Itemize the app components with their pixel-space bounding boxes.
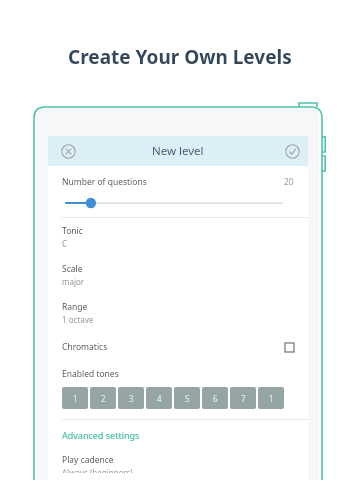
staticText: C xyxy=(62,238,68,249)
staticText: 7 xyxy=(241,393,246,404)
button[interactable]: Confirm xyxy=(281,140,303,162)
staticText: 4 xyxy=(157,393,162,404)
staticText: 1 xyxy=(73,393,78,404)
button[interactable]: 4 xyxy=(146,387,172,409)
button[interactable]: Close xyxy=(57,140,79,162)
staticText: Play cadence xyxy=(62,454,114,466)
staticText: Chromatics xyxy=(62,341,108,353)
staticText: Always (beginners) xyxy=(62,467,133,473)
button[interactable]: Advanced settings xyxy=(48,420,308,447)
button[interactable]: 1 xyxy=(258,387,284,409)
staticText: Tonic xyxy=(62,225,83,237)
button[interactable]: 3 xyxy=(118,387,144,409)
staticText: Advanced settings xyxy=(62,429,140,441)
button[interactable]: 2 xyxy=(90,387,116,409)
button[interactable]: Range xyxy=(48,294,308,332)
staticText: Scale xyxy=(62,263,83,275)
staticText: New level xyxy=(152,143,204,159)
staticText: Range xyxy=(62,301,88,313)
staticText: Enabled tones xyxy=(62,368,119,380)
button[interactable]: Tonic xyxy=(48,218,308,256)
staticText: 1 octave xyxy=(62,314,94,325)
staticText: Create Your Own Levels xyxy=(68,44,292,70)
staticText: major xyxy=(62,276,85,287)
staticText: 6 xyxy=(213,393,218,404)
staticText: 5 xyxy=(185,393,190,404)
button[interactable] xyxy=(62,197,294,209)
button[interactable]: Number of questions xyxy=(48,166,308,217)
button[interactable]: Chromatics xyxy=(48,332,308,362)
staticText: 1 xyxy=(269,393,274,404)
staticText: 3 xyxy=(129,393,134,404)
button[interactable]: 6 xyxy=(202,387,228,409)
button[interactable]: 7 xyxy=(230,387,256,409)
button[interactable]: 1 xyxy=(62,387,88,409)
button[interactable]: Scale xyxy=(48,256,308,294)
staticText: Number of questions xyxy=(62,176,147,188)
button[interactable]: 5 xyxy=(174,387,200,409)
staticText: 20 xyxy=(284,176,294,188)
button[interactable]: Play cadence xyxy=(48,447,308,480)
staticText: 2 xyxy=(101,393,106,404)
